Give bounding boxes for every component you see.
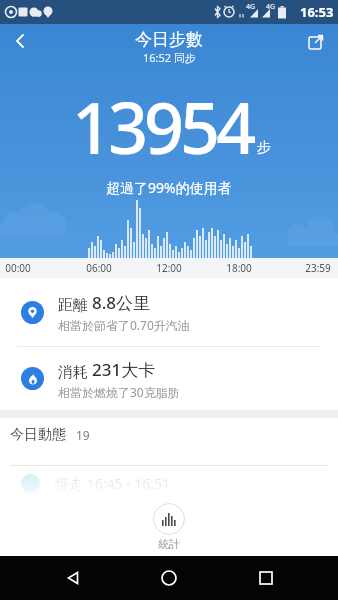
button[interactable] [49,556,97,600]
staticText: 統計 [158,537,180,551]
staticText: 步 [257,139,271,157]
staticText: 16:52 同步 [143,50,196,65]
staticText: 今日動態 [10,426,66,444]
staticText: 13954 [72,79,253,174]
staticText: 18:00 [219,261,259,275]
button[interactable]: 慢走 16:45 - 16:51 [21,469,338,497]
staticText: 4G [266,2,276,12]
staticText: 06:00 [79,261,119,275]
staticText: 4G [246,2,256,12]
staticText: 超過了99%的使用者 [106,178,232,197]
staticText: 消耗 [58,361,92,381]
button[interactable] [294,24,338,58]
staticText: 距離 [58,294,92,314]
staticText: 231大卡 [92,358,156,381]
staticText: 8.8公里 [92,291,151,314]
staticText: 19 [76,427,90,443]
button[interactable] [0,24,40,58]
staticText: 相當於燃燒了30克脂肪 [58,384,180,400]
staticText: 00:00 [0,261,38,275]
staticText: 今日步數 [135,29,203,50]
button[interactable]: 消耗 [21,347,338,410]
staticText: 12:00 [149,261,189,275]
button[interactable]: 距離 [21,278,338,346]
staticText: 相當於節省了0.70升汽油 [58,317,190,333]
button[interactable] [153,503,185,535]
staticText: 16:53 [300,3,334,21]
button[interactable] [242,556,290,600]
staticText: 慢走 16:45 - 16:51 [55,474,170,493]
button[interactable] [145,556,193,600]
staticText: 23:59 [298,261,338,275]
